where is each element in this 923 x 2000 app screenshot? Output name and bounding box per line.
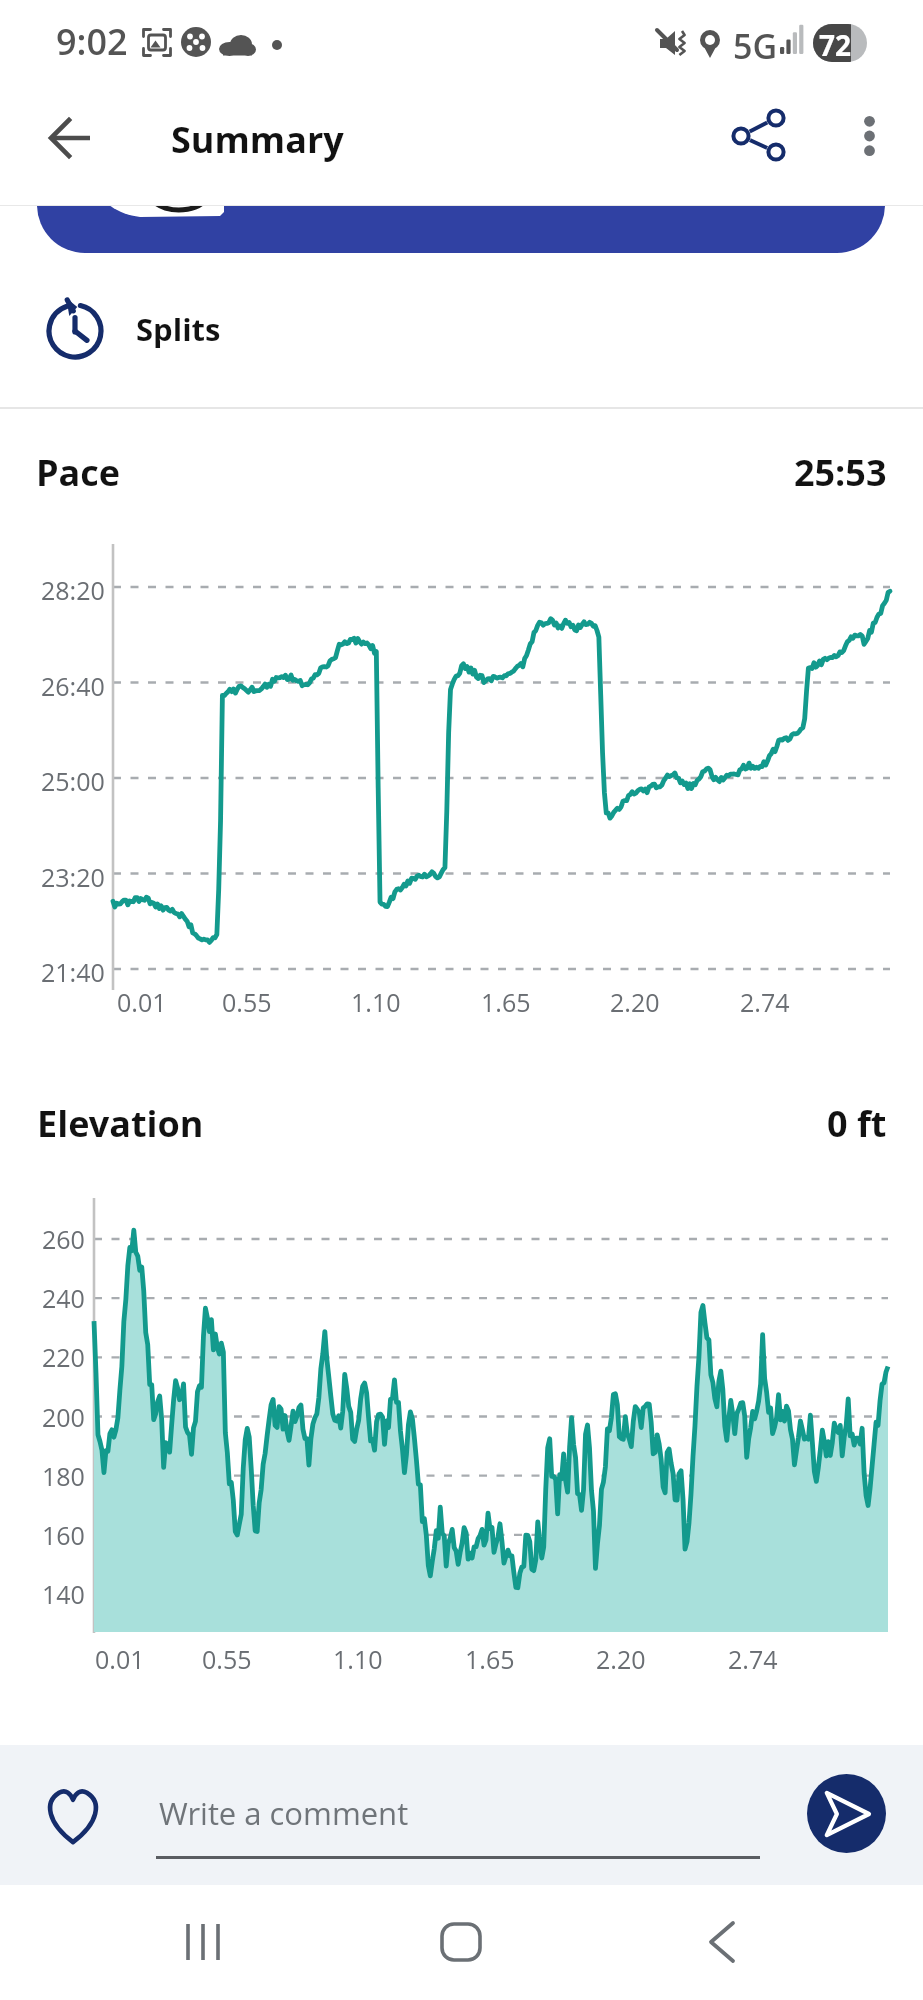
staticText: 1.65: [465, 1642, 515, 1676]
button[interactable]: Like: [28, 1771, 118, 1861]
staticText: 21:40: [41, 955, 105, 989]
staticText: 2.74: [740, 985, 790, 1019]
staticText: 0.55: [222, 985, 272, 1019]
staticText: 0.55: [202, 1642, 252, 1676]
staticText: 26:40: [41, 669, 105, 703]
staticText: 28:20: [41, 573, 105, 607]
button[interactable]: Share: [718, 94, 800, 176]
staticText: 160: [42, 1518, 85, 1552]
staticText: 72: [819, 26, 851, 64]
staticText: 5G: [733, 23, 778, 69]
button[interactable]: Back: [43, 98, 123, 178]
staticText: 240: [42, 1281, 85, 1315]
button[interactable]: Back: [661, 1888, 781, 2000]
staticText: 23:20: [41, 860, 105, 894]
button[interactable]: Recents: [143, 1888, 263, 2000]
staticText: 2.74: [728, 1642, 778, 1676]
button[interactable]: Write a comment: [156, 1765, 762, 1865]
staticText: 180: [42, 1459, 85, 1493]
staticText: 0.01: [95, 1642, 145, 1676]
staticText: 1.10: [333, 1642, 383, 1676]
button[interactable]: Home: [401, 1888, 521, 2000]
button[interactable]: Send: [807, 1774, 886, 1853]
staticText: 2.20: [596, 1642, 646, 1676]
staticText: Summary: [171, 115, 344, 164]
button[interactable]: Splits: [0, 258, 923, 399]
staticText: Write a comment: [159, 1792, 409, 1834]
staticText: 200: [42, 1400, 85, 1434]
button[interactable]: [37, 206, 885, 253]
staticText: 25:53: [794, 448, 887, 497]
staticText: Elevation: [37, 1099, 204, 1148]
staticText: 0.01: [117, 985, 167, 1019]
staticText: 1.10: [351, 985, 401, 1019]
staticText: 25:00: [41, 764, 105, 798]
staticText: 0 ft: [827, 1099, 887, 1148]
staticText: Pace: [36, 448, 121, 497]
staticText: 2.20: [610, 985, 660, 1019]
staticText: 9:02: [56, 17, 128, 66]
staticText: 220: [42, 1340, 85, 1374]
staticText: 1.65: [481, 985, 531, 1019]
button[interactable]: More options: [830, 98, 906, 174]
staticText: 260: [42, 1222, 85, 1256]
staticText: Splits: [136, 308, 221, 350]
staticText: 140: [42, 1577, 85, 1611]
